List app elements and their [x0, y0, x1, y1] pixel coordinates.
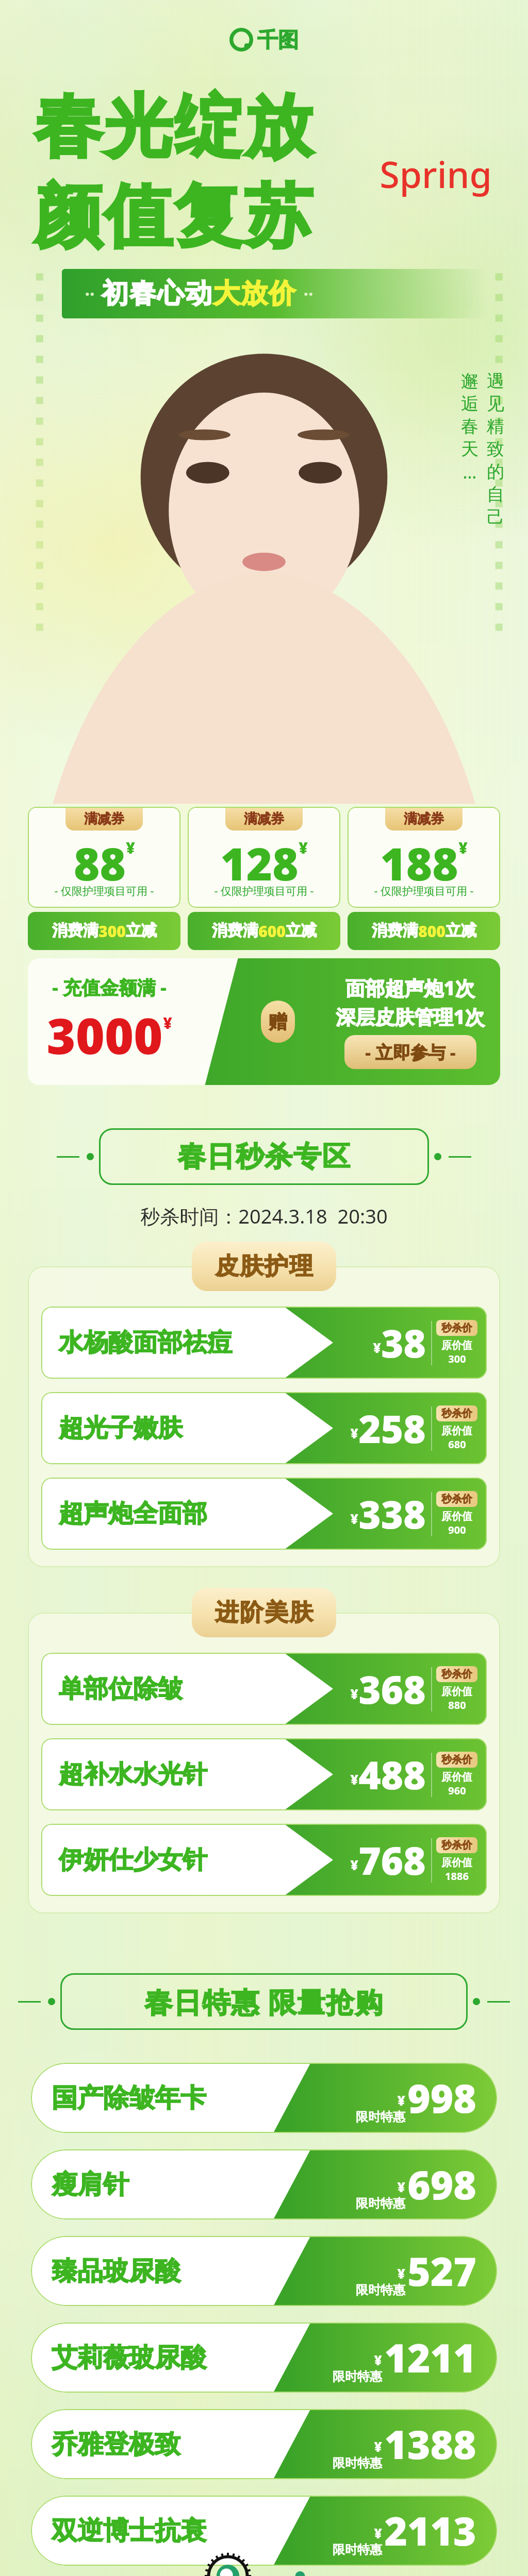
staticText: 88: [74, 833, 126, 893]
staticText: ¥: [373, 1338, 381, 1357]
staticText: 秒杀价: [441, 1668, 472, 1681]
staticText: 1211: [384, 2331, 476, 2384]
button[interactable]: 国产除皱年卡: [31, 2063, 497, 2133]
staticText: ¥: [350, 1856, 358, 1874]
staticText: 千图: [257, 27, 299, 53]
staticText: 伊妍仕少女针: [59, 1844, 207, 1875]
button[interactable]: 瘦肩针: [31, 2149, 497, 2219]
button[interactable]: 满减券: [28, 807, 180, 950]
staticText: 300: [98, 921, 126, 942]
staticText: 进阶美肤: [214, 1598, 313, 1628]
staticText: 限时特惠: [356, 2196, 405, 2211]
staticText: 臻品玻尿酸: [52, 2255, 180, 2287]
staticText: 面部超声炮1次: [345, 974, 475, 1001]
staticText: 秒杀时间：2024.3.18 20:30: [140, 1202, 388, 1229]
staticText: ¥: [397, 2178, 405, 2196]
staticText: 原价值: [441, 1510, 472, 1523]
staticText: 国产除皱年卡: [52, 2082, 206, 2114]
staticText: 超光子嫩肤: [59, 1413, 183, 1444]
staticText: ¥: [350, 1424, 358, 1442]
staticText: 颜值复苏: [34, 174, 507, 260]
staticText: ¥: [374, 2351, 382, 2369]
staticText: ¥: [350, 1685, 358, 1703]
button[interactable]: 水杨酸面部祛痘: [41, 1307, 487, 1379]
staticText: ¥: [299, 837, 308, 858]
staticText: 698: [407, 2158, 476, 2211]
staticText: 限时特惠: [333, 2455, 382, 2471]
staticText: - 充值金额满 -: [52, 975, 167, 1000]
staticText: 秒杀价: [441, 1839, 472, 1852]
staticText: 单部位除皱: [59, 1673, 183, 1704]
button[interactable]: - 立即参与 -: [344, 1035, 476, 1069]
staticText: ¥: [397, 2264, 405, 2282]
button[interactable]: 满减券: [348, 807, 500, 950]
staticText: - 仅限护理项目可用 -: [348, 884, 500, 899]
staticText: 原价值: [441, 1856, 472, 1869]
button[interactable]: 超补水水光针: [41, 1738, 487, 1810]
button[interactable]: 单部位除皱: [41, 1653, 487, 1725]
staticText: 立减: [445, 921, 476, 940]
staticText: 960: [448, 1784, 466, 1798]
staticText: 限时特惠: [333, 2542, 382, 2557]
button[interactable]: - 充值金额满 -: [28, 958, 500, 1085]
staticText: 超声炮全面部: [59, 1498, 207, 1529]
staticText: 1388: [384, 2417, 476, 2471]
staticText: 秒杀价: [441, 1753, 472, 1766]
staticText: 满减券: [84, 810, 124, 827]
staticText: 超补水水光针: [59, 1759, 207, 1790]
staticText: 秒杀价: [441, 1321, 472, 1334]
staticText: 368: [358, 1663, 426, 1715]
staticText: ¥: [350, 1510, 358, 1528]
staticText: 998: [407, 2071, 476, 2125]
button[interactable]: 臻品玻尿酸: [31, 2236, 497, 2306]
staticText: 水杨酸面部祛痘: [59, 1327, 232, 1358]
staticText: 527: [407, 2244, 476, 2298]
button[interactable]: 超声炮全面部: [41, 1478, 487, 1550]
staticText: 488: [358, 1749, 426, 1801]
staticText: 限时特惠: [356, 2282, 405, 2298]
staticText: 瘦肩针: [52, 2168, 129, 2201]
staticText: 限时特惠: [356, 2109, 405, 2125]
button[interactable]: 乔雅登极致: [31, 2409, 497, 2479]
button[interactable]: 超光子嫩肤: [41, 1392, 487, 1464]
staticText: 立减: [126, 921, 157, 940]
staticText: 满减券: [404, 810, 444, 827]
staticText: ··: [303, 282, 313, 306]
button[interactable]: 满减券: [188, 807, 340, 950]
staticText: 赠: [269, 1010, 287, 1033]
staticText: 680: [448, 1437, 466, 1451]
staticText: 600: [258, 921, 286, 942]
staticText: ¥: [458, 837, 468, 858]
staticText: - 仅限护理项目可用 -: [28, 884, 180, 899]
staticText: 艾莉薇玻尿酸: [52, 2342, 206, 2374]
staticText: 春日特惠 限量抢购: [144, 1982, 384, 2021]
staticText: 原价值: [441, 1771, 472, 1784]
staticText: 双逆博士抗衰: [52, 2515, 206, 2547]
staticText: 消费满: [52, 921, 98, 940]
staticText: ¥: [350, 1770, 358, 1788]
staticText: 邂 逅 春 天 …: [461, 370, 478, 483]
staticText: 大放价: [212, 277, 296, 311]
staticText: 深层皮肤管理1次: [336, 1003, 485, 1030]
staticText: 秒杀价: [441, 1407, 472, 1420]
button[interactable]: 艾莉薇玻尿酸: [31, 2323, 497, 2393]
staticText: ··: [85, 282, 95, 306]
staticText: 春日秒杀专区: [177, 1139, 351, 1174]
staticText: 3000: [46, 1001, 163, 1069]
button[interactable]: 伊妍仕少女针: [41, 1824, 487, 1896]
staticText: 128: [220, 833, 299, 893]
staticText: 原价值: [441, 1339, 472, 1352]
staticText: ¥: [397, 2091, 405, 2109]
staticText: 立减: [286, 921, 317, 940]
staticText: 768: [358, 1834, 426, 1886]
staticText: 限时特惠: [333, 2369, 382, 2384]
staticText: 300: [448, 1352, 466, 1366]
staticText: 258: [358, 1402, 426, 1454]
button[interactable]: 双逆博士抗衰: [31, 2496, 497, 2566]
staticText: 秒杀价: [441, 1493, 472, 1505]
staticText: 皮肤护理: [214, 1251, 313, 1281]
staticText: ¥: [126, 837, 135, 858]
staticText: 338: [358, 1488, 426, 1540]
staticText: 2113: [384, 2504, 476, 2557]
button[interactable]: 千图: [226, 24, 302, 56]
